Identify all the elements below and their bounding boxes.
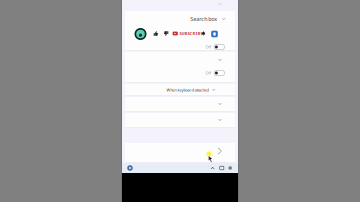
button[interactable]: Open app xyxy=(211,31,218,37)
button[interactable]: Start xyxy=(127,165,133,171)
button[interactable]: Like xyxy=(154,31,158,36)
button[interactable]: When keyboard attached xyxy=(166,87,215,93)
button[interactable]: SUBSCRIBE xyxy=(173,30,202,36)
staticText: Off xyxy=(205,44,211,50)
button[interactable]: Volume xyxy=(228,166,232,170)
staticText: SUBSCRIBE xyxy=(179,31,202,36)
staticText: When keyboard attached xyxy=(166,87,208,93)
staticText: Off xyxy=(205,70,211,76)
staticText: Search box xyxy=(190,15,217,23)
button[interactable]: Dislike xyxy=(164,31,168,36)
button[interactable]: Notifications xyxy=(201,31,206,36)
button[interactable]: Search box xyxy=(190,15,226,23)
button[interactable]: Show hidden icons xyxy=(210,167,215,169)
button[interactable]: Network xyxy=(220,166,224,170)
